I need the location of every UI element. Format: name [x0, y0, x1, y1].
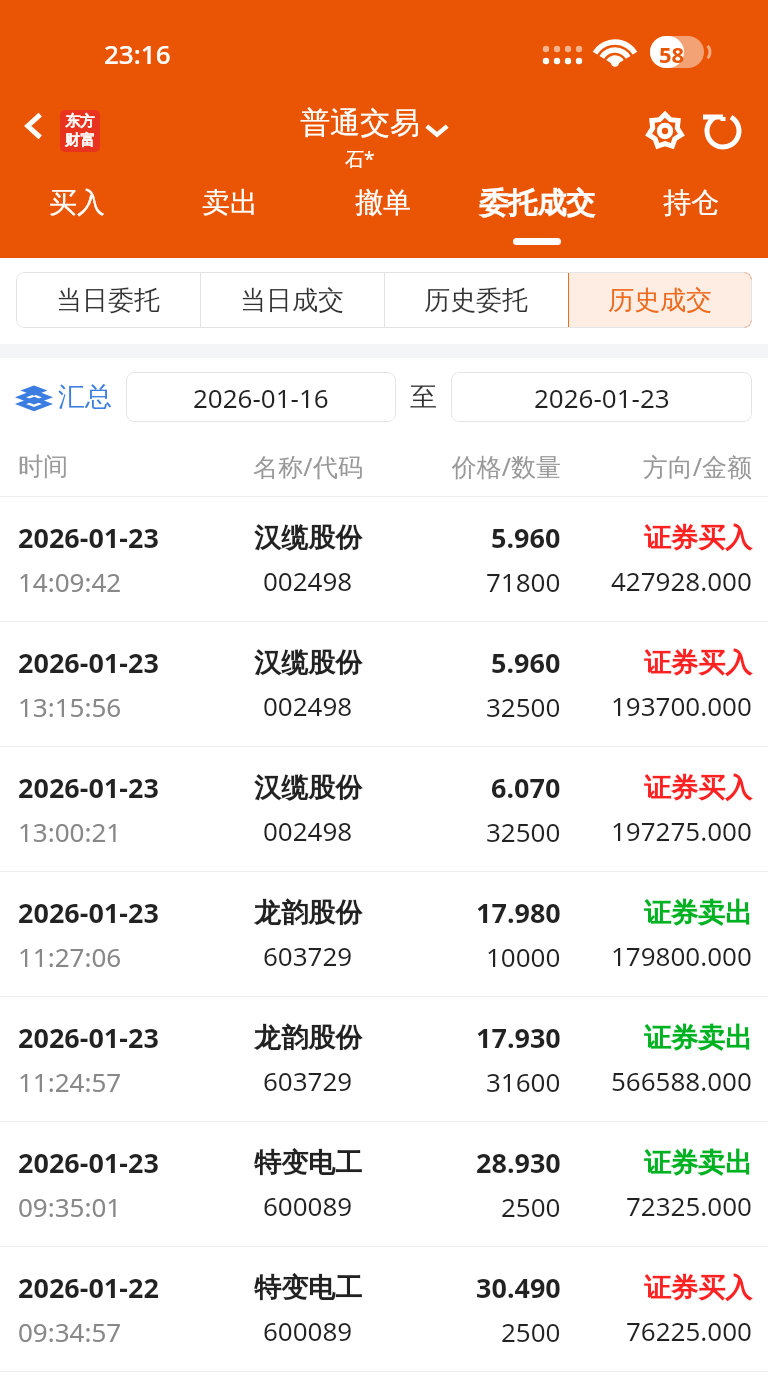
- staticText: 566588.000: [611, 1063, 752, 1098]
- staticText: 价格/数量: [400, 449, 561, 483]
- staticText: 197275.000: [611, 813, 752, 848]
- staticText: 31600: [486, 1064, 561, 1099]
- staticText: 427928.000: [611, 563, 752, 598]
- staticText: 财富: [65, 131, 95, 150]
- staticText: 002498: [263, 813, 353, 848]
- staticText: 09:34:57: [18, 1314, 122, 1349]
- button[interactable]: 委托成交: [460, 185, 614, 258]
- staticText: 汉缆股份: [254, 771, 362, 805]
- staticText: 2026-01-16: [193, 380, 329, 415]
- staticText: 汉缆股份: [254, 646, 362, 680]
- staticText: 2026-01-23: [18, 1144, 159, 1181]
- button[interactable]: 2026-01-23: [0, 997, 768, 1121]
- staticText: 603729: [263, 1063, 353, 1098]
- button[interactable]: 买入: [0, 185, 153, 258]
- staticText: 买入: [49, 185, 105, 220]
- staticText: 30.490: [476, 1269, 561, 1306]
- staticText: 2026-01-23: [18, 519, 159, 556]
- button[interactable]: Settings: [638, 104, 692, 158]
- button[interactable]: 2026-01-23: [0, 622, 768, 746]
- staticText: 32500: [486, 814, 561, 849]
- staticText: 13:00:21: [18, 814, 122, 849]
- staticText: 撤单: [355, 185, 411, 220]
- staticText: 东方: [65, 112, 95, 131]
- staticText: 证券卖出: [644, 896, 752, 930]
- staticText: 2026-01-23: [18, 769, 159, 806]
- staticText: 002498: [263, 688, 353, 723]
- staticText: 普通交易: [300, 104, 420, 142]
- staticText: 龙韵股份: [254, 896, 362, 930]
- button[interactable]: 东方财富: [60, 110, 100, 152]
- staticText: 58: [659, 39, 685, 69]
- staticText: 特变电工: [254, 1271, 362, 1305]
- staticText: 193700.000: [611, 688, 752, 723]
- button[interactable]: 撤单: [306, 185, 460, 258]
- staticText: 历史成交: [608, 284, 712, 317]
- button[interactable]: 持仓: [614, 185, 768, 258]
- staticText: 证券买入: [644, 521, 752, 555]
- staticText: 2500: [501, 1189, 561, 1224]
- staticText: 76225.000: [626, 1313, 752, 1348]
- staticText: 委托成交: [479, 185, 595, 222]
- staticText: 600089: [263, 1188, 353, 1223]
- staticText: 002498: [263, 563, 353, 598]
- button[interactable]: Refresh: [696, 104, 750, 158]
- button[interactable]: 普通交易: [300, 104, 454, 172]
- staticText: 71800: [486, 564, 561, 599]
- staticText: 09:35:01: [18, 1189, 122, 1224]
- button[interactable]: 2026-01-23: [451, 372, 752, 422]
- staticText: 603729: [263, 938, 353, 973]
- staticText: 至: [410, 380, 437, 414]
- staticText: 11:27:06: [18, 939, 122, 974]
- staticText: 汉缆股份: [254, 521, 362, 555]
- button[interactable]: Back: [8, 100, 60, 152]
- staticText: 14:09:42: [18, 564, 122, 599]
- staticText: 石*: [345, 146, 375, 172]
- staticText: 证券买入: [644, 646, 752, 680]
- staticText: 2026-01-23: [18, 894, 159, 931]
- staticText: 时间: [18, 451, 216, 482]
- staticText: 17.930: [476, 1019, 561, 1056]
- staticText: 17.980: [476, 894, 561, 931]
- staticText: 特变电工: [254, 1146, 362, 1180]
- staticText: 23:16: [104, 36, 171, 71]
- staticText: 13:15:56: [18, 689, 122, 724]
- button[interactable]: 2026-01-23: [0, 872, 768, 996]
- staticText: 汇总: [58, 380, 112, 414]
- staticText: 历史委托: [424, 284, 528, 317]
- staticText: 6.070: [491, 769, 561, 806]
- button[interactable]: 当日成交: [200, 272, 384, 328]
- staticText: 2026-01-23: [18, 1019, 159, 1056]
- button[interactable]: 2026-01-16: [126, 372, 396, 422]
- button[interactable]: 2026-01-22: [0, 1247, 768, 1371]
- staticText: 当日成交: [240, 284, 344, 317]
- button[interactable]: 2026-01-23: [0, 1122, 768, 1246]
- button[interactable]: 2026-01-23: [0, 497, 768, 621]
- staticText: 卖出: [202, 185, 258, 220]
- staticText: 方向/金额: [561, 449, 752, 483]
- staticText: 2026-01-22: [18, 1269, 159, 1306]
- button[interactable]: 汇总: [18, 380, 112, 414]
- button[interactable]: 当日委托: [16, 272, 200, 328]
- staticText: 持仓: [663, 185, 719, 220]
- staticText: 名称/代码: [216, 449, 400, 483]
- staticText: 证券买入: [644, 771, 752, 805]
- staticText: 证券卖出: [644, 1021, 752, 1055]
- staticText: 600089: [263, 1313, 353, 1348]
- staticText: 2026-01-23: [534, 380, 670, 415]
- staticText: 32500: [486, 689, 561, 724]
- staticText: 2500: [501, 1314, 561, 1349]
- button[interactable]: 卖出: [153, 185, 306, 258]
- staticText: 179800.000: [611, 938, 752, 973]
- staticText: 证券卖出: [644, 1146, 752, 1180]
- button[interactable]: 历史成交: [568, 272, 752, 328]
- staticText: 当日委托: [56, 284, 160, 317]
- button[interactable]: 历史委托: [384, 272, 568, 328]
- staticText: 11:24:57: [18, 1064, 122, 1099]
- staticText: 5.960: [491, 519, 561, 556]
- button[interactable]: 2026-01-23: [0, 747, 768, 871]
- staticText: 10000: [486, 939, 561, 974]
- staticText: 2026-01-23: [18, 644, 159, 681]
- staticText: 证券买入: [644, 1271, 752, 1305]
- staticText: 28.930: [476, 1144, 561, 1181]
